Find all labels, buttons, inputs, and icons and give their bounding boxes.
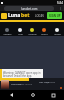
- staticText: LOGIN: [35, 14, 44, 18]
- button[interactable]: SIGN UP: [47, 12, 62, 19]
- staticText: Top Wins: [39, 80, 50, 83]
- button[interactable]: lunabet.com: [4, 6, 54, 11]
- button[interactable]: CASINO: [27, 22, 37, 36]
- button[interactable]: Warning: CANNOT open app in browser. Ins…: [0, 69, 43, 78]
- staticText: lunabet.com: [21, 7, 38, 11]
- staticText: Warning: CANNOT open app in browser. Ins…: [3, 71, 41, 77]
- staticText: SLOTS: [41, 33, 48, 36]
- button[interactable]: More options: [59, 7, 62, 10]
- button[interactable]: LIVE: [15, 22, 25, 36]
- button[interactable]: SPORTS: [2, 22, 12, 36]
- staticText: Welcome: [11, 82, 22, 85]
- button[interactable]: Recent apps: [43, 90, 64, 100]
- button[interactable]: Back: [0, 90, 22, 100]
- staticText: MORE: [54, 33, 61, 36]
- button[interactable]: SLOTS: [39, 22, 49, 36]
- button[interactable]: MORE: [52, 22, 62, 36]
- button[interactable]: Promotion: [1, 80, 9, 89]
- staticText: SLOT SPINS: [19, 82, 32, 85]
- button[interactable]: Home: [22, 90, 43, 100]
- staticText: Jackpot: [47, 80, 56, 83]
- staticText: Luna: [8, 12, 21, 19]
- staticText: 5:34: [57, 1, 63, 5]
- staticText: SIGN UP: [49, 14, 61, 18]
- staticText: CASINO: [28, 33, 37, 36]
- staticText: bet: [21, 12, 30, 19]
- button[interactable]: LOGIN: [34, 12, 45, 19]
- staticText: SPORTS: [3, 33, 12, 36]
- staticText: LIVE: [18, 33, 23, 36]
- button[interactable]: Menu: [1, 13, 7, 19]
